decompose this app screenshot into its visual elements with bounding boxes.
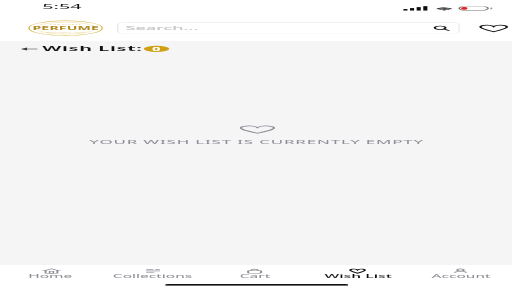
button[interactable]: Home	[0, 265, 102, 282]
button[interactable]: Perfume home	[28, 20, 103, 36]
button[interactable]: Wish List	[306, 265, 409, 282]
button[interactable]: Wish list	[475, 22, 512, 34]
staticText: Account	[432, 273, 491, 279]
staticText: 0	[152, 46, 161, 52]
staticText: 5:54	[42, 2, 82, 11]
staticText: Collections	[113, 273, 193, 279]
button[interactable]: Cart	[203, 265, 306, 282]
staticText: PERFUME	[32, 25, 100, 32]
button[interactable]: Search...	[117, 22, 460, 34]
staticText: THE FINEST	[49, 23, 82, 25]
button[interactable]: Collections	[102, 265, 203, 282]
staticText: Wish List:	[42, 44, 144, 53]
staticText: Home	[28, 273, 73, 279]
staticText: BOUTIQUE 1920	[46, 32, 85, 33]
button[interactable]: Back	[20, 45, 38, 53]
other: Search	[433, 25, 450, 31]
button[interactable]: Account	[409, 265, 512, 282]
staticText: Search...	[125, 24, 199, 32]
staticText: Wish List	[324, 273, 392, 279]
staticText: Cart	[240, 273, 271, 279]
staticText: YOUR WISH LIST IS CURRENTLY EMPTY	[89, 138, 425, 145]
